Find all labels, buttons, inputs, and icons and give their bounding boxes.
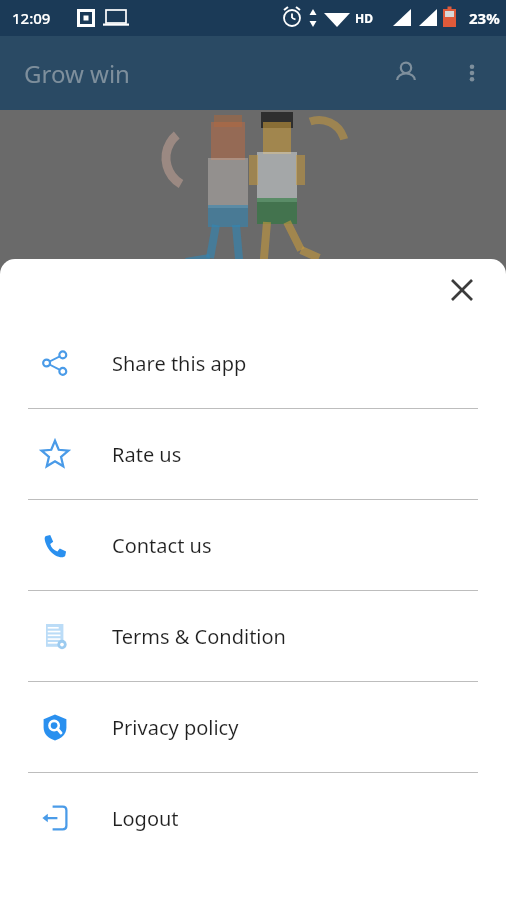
button[interactable]: Share this app [0, 318, 506, 408]
button[interactable]: Close [440, 268, 484, 312]
staticText: Share this app [112, 350, 247, 377]
staticText: Terms & Condition [112, 623, 286, 650]
button[interactable]: Privacy policy [0, 682, 506, 772]
staticText: 12:09 [12, 8, 51, 28]
button[interactable]: Contact us [0, 500, 506, 590]
staticText: Contact us [112, 532, 212, 559]
staticText: 23% [469, 8, 500, 28]
staticText: Logout [112, 805, 179, 832]
button[interactable]: Rate us [0, 409, 506, 499]
button[interactable]: Terms & Condition [0, 591, 506, 681]
button[interactable]: More options [448, 49, 496, 97]
staticText: Rate us [112, 441, 182, 468]
button[interactable]: Profile [382, 49, 430, 97]
staticText: Grow win [24, 57, 130, 90]
button[interactable]: Logout [0, 773, 506, 863]
staticText: HD [355, 10, 373, 26]
staticText: Privacy policy [112, 714, 239, 741]
